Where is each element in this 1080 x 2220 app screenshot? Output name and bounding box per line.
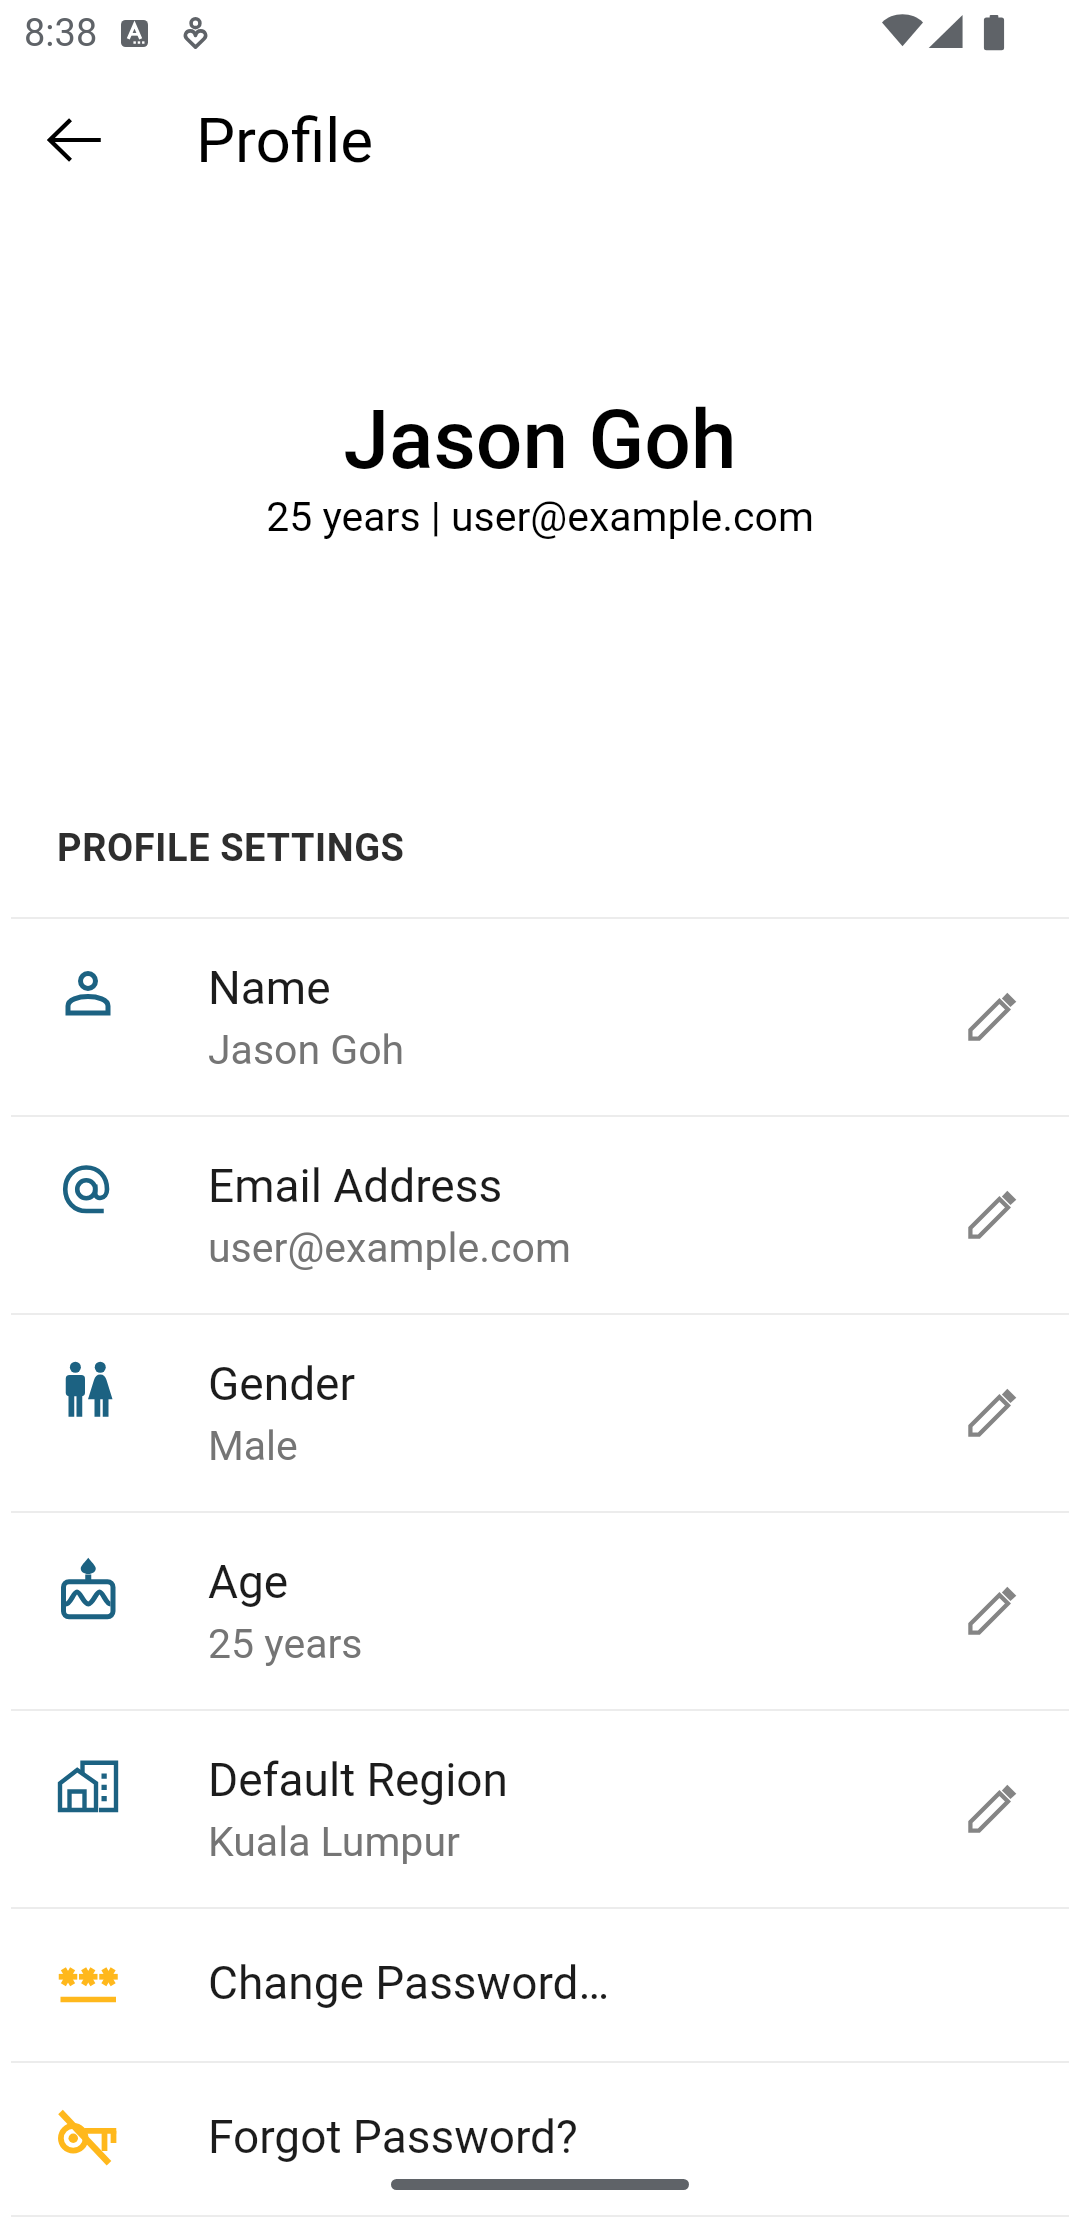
staticText: PROFILE SETTINGS [57,826,405,871]
staticText: Profile [196,104,374,177]
button[interactable]: Default Region [0,1711,1080,1907]
button[interactable]: Edit Name [944,969,1040,1065]
staticText: 25 years | user@example.com [266,493,814,541]
button[interactable]: Back [27,92,123,188]
button[interactable]: Gender [0,1315,1080,1511]
staticText: Male [208,1422,298,1470]
staticText: Gender [208,1357,356,1411]
staticText: Jason Goh [208,1026,405,1074]
staticText: Kuala Lumpur [208,1818,460,1866]
button[interactable]: Forgot Password? [0,2063,1080,2215]
button[interactable]: Edit Default Region [944,1761,1040,1857]
staticText: Age [208,1555,289,1609]
button[interactable]: Change Password… [0,1909,1080,2061]
staticText: 25 years [208,1620,363,1668]
button[interactable]: Edit Age [944,1563,1040,1659]
staticText: Email Address [208,1159,503,1213]
staticText: user@example.com [208,1224,571,1272]
button[interactable]: Email Address [0,1117,1080,1313]
staticText: 8:38 [24,11,98,56]
button[interactable]: Edit Email Address [944,1167,1040,1263]
staticText: Default Region [208,1753,508,1807]
button[interactable]: Edit Gender [944,1365,1040,1461]
staticText: Name [208,961,331,1015]
button[interactable]: Name [0,919,1080,1115]
staticText: Forgot Password? [208,2110,578,2164]
staticText: Jason Goh [343,392,737,488]
staticText: Change Password… [208,1956,610,2010]
button[interactable]: Age [0,1513,1080,1709]
